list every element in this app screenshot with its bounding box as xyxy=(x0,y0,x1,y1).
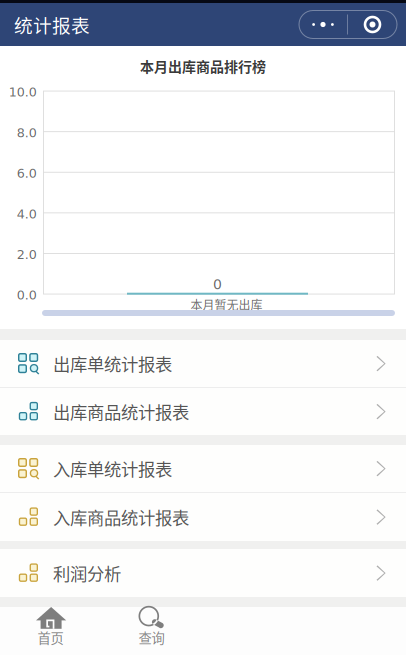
staticText: 8.0 xyxy=(17,125,37,140)
staticText: 出库单统计报表 xyxy=(53,351,172,376)
staticText: 查询 xyxy=(138,628,164,647)
staticText: 10.0 xyxy=(9,85,37,99)
staticText: 4.0 xyxy=(17,207,37,221)
staticText: 本月出库商品排行榜 xyxy=(140,56,266,76)
button[interactable]: 出库单统计报表 xyxy=(0,340,406,387)
staticText: 利润分析 xyxy=(53,560,121,586)
staticText: 6.0 xyxy=(17,166,37,181)
button[interactable]: 利润分析 xyxy=(0,549,406,597)
staticText: 统计报表 xyxy=(14,11,90,38)
button[interactable]: Close mini program xyxy=(348,10,397,38)
button[interactable]: 出库商品统计报表 xyxy=(0,388,406,435)
staticText: 入库商品统计报表 xyxy=(53,504,189,530)
button[interactable]: 入库单统计报表 xyxy=(0,445,406,492)
button[interactable]: 入库商品统计报表 xyxy=(0,493,406,541)
staticText: 2.0 xyxy=(17,247,37,262)
button[interactable]: 查询 xyxy=(101,607,202,655)
staticText: 出库商品统计报表 xyxy=(53,399,189,424)
staticText: 入库单统计报表 xyxy=(53,456,172,481)
staticText: 0 xyxy=(213,276,222,293)
staticText: 本月暂无出库 xyxy=(190,296,262,313)
staticText: 首页 xyxy=(37,628,63,647)
button[interactable]: More xyxy=(299,10,347,38)
staticText: 0.0 xyxy=(17,288,37,302)
button[interactable]: 首页 xyxy=(0,607,101,655)
